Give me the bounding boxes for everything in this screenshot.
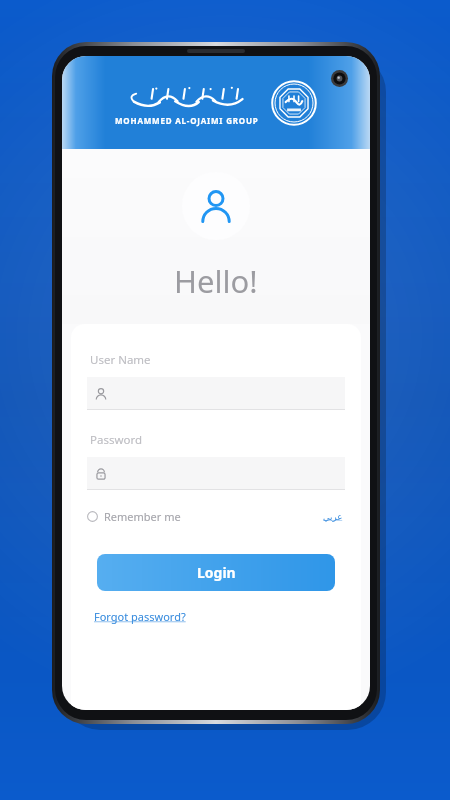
staticText: Forgot password? [94, 609, 186, 624]
staticText: Password [90, 432, 143, 448]
staticText: MOHAMMED AL-OJAIMI GROUP [115, 115, 259, 126]
staticText: User Name [90, 352, 151, 368]
staticText: Hello! [174, 260, 258, 302]
staticText: عربي [323, 512, 343, 522]
button[interactable] [87, 377, 345, 410]
button[interactable]: Remember me [87, 509, 181, 524]
staticText: Remember me [104, 509, 181, 524]
staticText: Login [197, 563, 236, 582]
button[interactable]: Forgot password? [92, 607, 188, 626]
button[interactable]: Login [97, 554, 335, 591]
button[interactable] [87, 457, 345, 490]
button[interactable]: عربي [321, 510, 345, 524]
